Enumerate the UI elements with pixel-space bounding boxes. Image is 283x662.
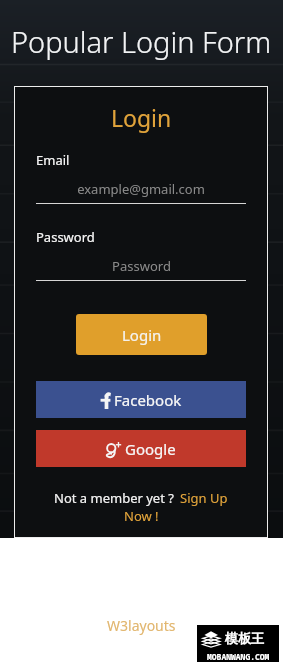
staticText: Password <box>36 228 95 246</box>
staticText: Login <box>122 325 162 345</box>
staticText: Sign Up <box>180 489 228 507</box>
staticText: Password <box>112 257 171 275</box>
staticText: example@gmail.com <box>77 180 205 198</box>
staticText: MOBANWANG.COM <box>207 651 270 662</box>
staticText: Google <box>125 439 176 459</box>
button[interactable]: Password <box>36 257 246 275</box>
staticText: Popular Login Form <box>11 22 272 61</box>
button[interactable]: example@gmail.com <box>36 180 246 198</box>
staticText: Now ! <box>124 507 159 525</box>
staticText: 模板王 <box>225 630 264 646</box>
staticText: Facebook <box>114 390 182 410</box>
button[interactable]: Facebook <box>36 381 246 418</box>
staticText: Login <box>111 102 172 133</box>
button[interactable]: Not a member yet ? <box>36 489 246 525</box>
button[interactable]: Login <box>76 314 207 355</box>
button[interactable]: W3layouts <box>107 616 176 635</box>
staticText: W3layouts <box>107 616 176 635</box>
button[interactable]: Google <box>36 430 246 467</box>
staticText: Email <box>36 151 70 169</box>
staticText: Not a member yet ? <box>54 489 174 507</box>
